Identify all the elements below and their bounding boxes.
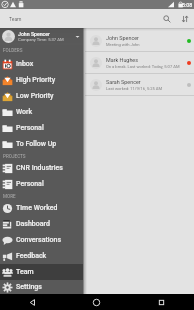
button[interactable]: CNR Industries <box>0 160 83 176</box>
button[interactable]: Settings <box>0 280 83 294</box>
staticText: Sarah Spencer <box>106 79 141 85</box>
staticText: Team <box>9 16 22 22</box>
button[interactable]: Time Worked <box>0 200 83 216</box>
staticText: Time Worked <box>16 204 58 212</box>
button[interactable]: Recent apps <box>129 294 194 310</box>
button[interactable]: Feedback <box>0 248 83 264</box>
staticText: Work <box>16 108 33 116</box>
button[interactable]: Low Priority <box>0 88 83 104</box>
staticText: John Spencer <box>106 35 139 41</box>
button[interactable]: To Follow Up <box>0 136 83 152</box>
button[interactable]: Sort <box>176 10 194 28</box>
button[interactable]: Search <box>158 10 176 28</box>
button[interactable]: Back <box>0 294 64 310</box>
staticText: Meeting with John <box>106 42 140 47</box>
staticText: To Follow Up <box>16 140 57 148</box>
staticText: Inbox <box>16 60 34 68</box>
button[interactable]: Dashboard <box>0 216 83 232</box>
button[interactable]: Mark Hughes <box>0 52 194 73</box>
button[interactable]: High Priority <box>0 72 83 88</box>
staticText: Company Time: 5:37 AM <box>18 37 64 42</box>
staticText: On a break. Last worked: Today, 5:07 AM <box>106 64 180 69</box>
staticText: FOLDERS <box>3 48 83 53</box>
staticText: Personal <box>16 124 44 132</box>
button[interactable]: John Spencer <box>0 28 83 45</box>
staticText: Settings <box>16 283 42 291</box>
button[interactable]: Conversations <box>0 232 83 248</box>
staticText: 5:08 <box>182 2 193 8</box>
staticText: Last worked: 11/9/16, 5:25 AM <box>106 86 163 91</box>
staticText: Personal <box>16 180 44 188</box>
staticText: Team <box>16 268 34 276</box>
staticText: Conversations <box>16 236 62 244</box>
button[interactable]: John Spencer <box>0 30 194 51</box>
staticText: Dashboard <box>16 220 50 228</box>
staticText: John Spencer <box>18 31 50 37</box>
button[interactable]: Team <box>0 264 83 280</box>
button[interactable]: Inbox <box>0 56 83 72</box>
button[interactable]: Sarah Spencer <box>0 74 194 95</box>
button[interactable]: Home <box>64 294 129 310</box>
staticText: High Priority <box>16 76 56 84</box>
staticText: Feedback <box>16 252 47 260</box>
staticText: CNR Industries <box>16 164 63 172</box>
button[interactable]: Personal <box>0 176 83 192</box>
staticText: PROJECTS <box>3 154 83 159</box>
button[interactable]: Work <box>0 104 83 120</box>
button[interactable]: Personal <box>0 120 83 136</box>
staticText: Low Priority <box>16 92 54 100</box>
staticText: Mark Hughes <box>106 57 138 63</box>
staticText: MORE <box>3 194 83 199</box>
